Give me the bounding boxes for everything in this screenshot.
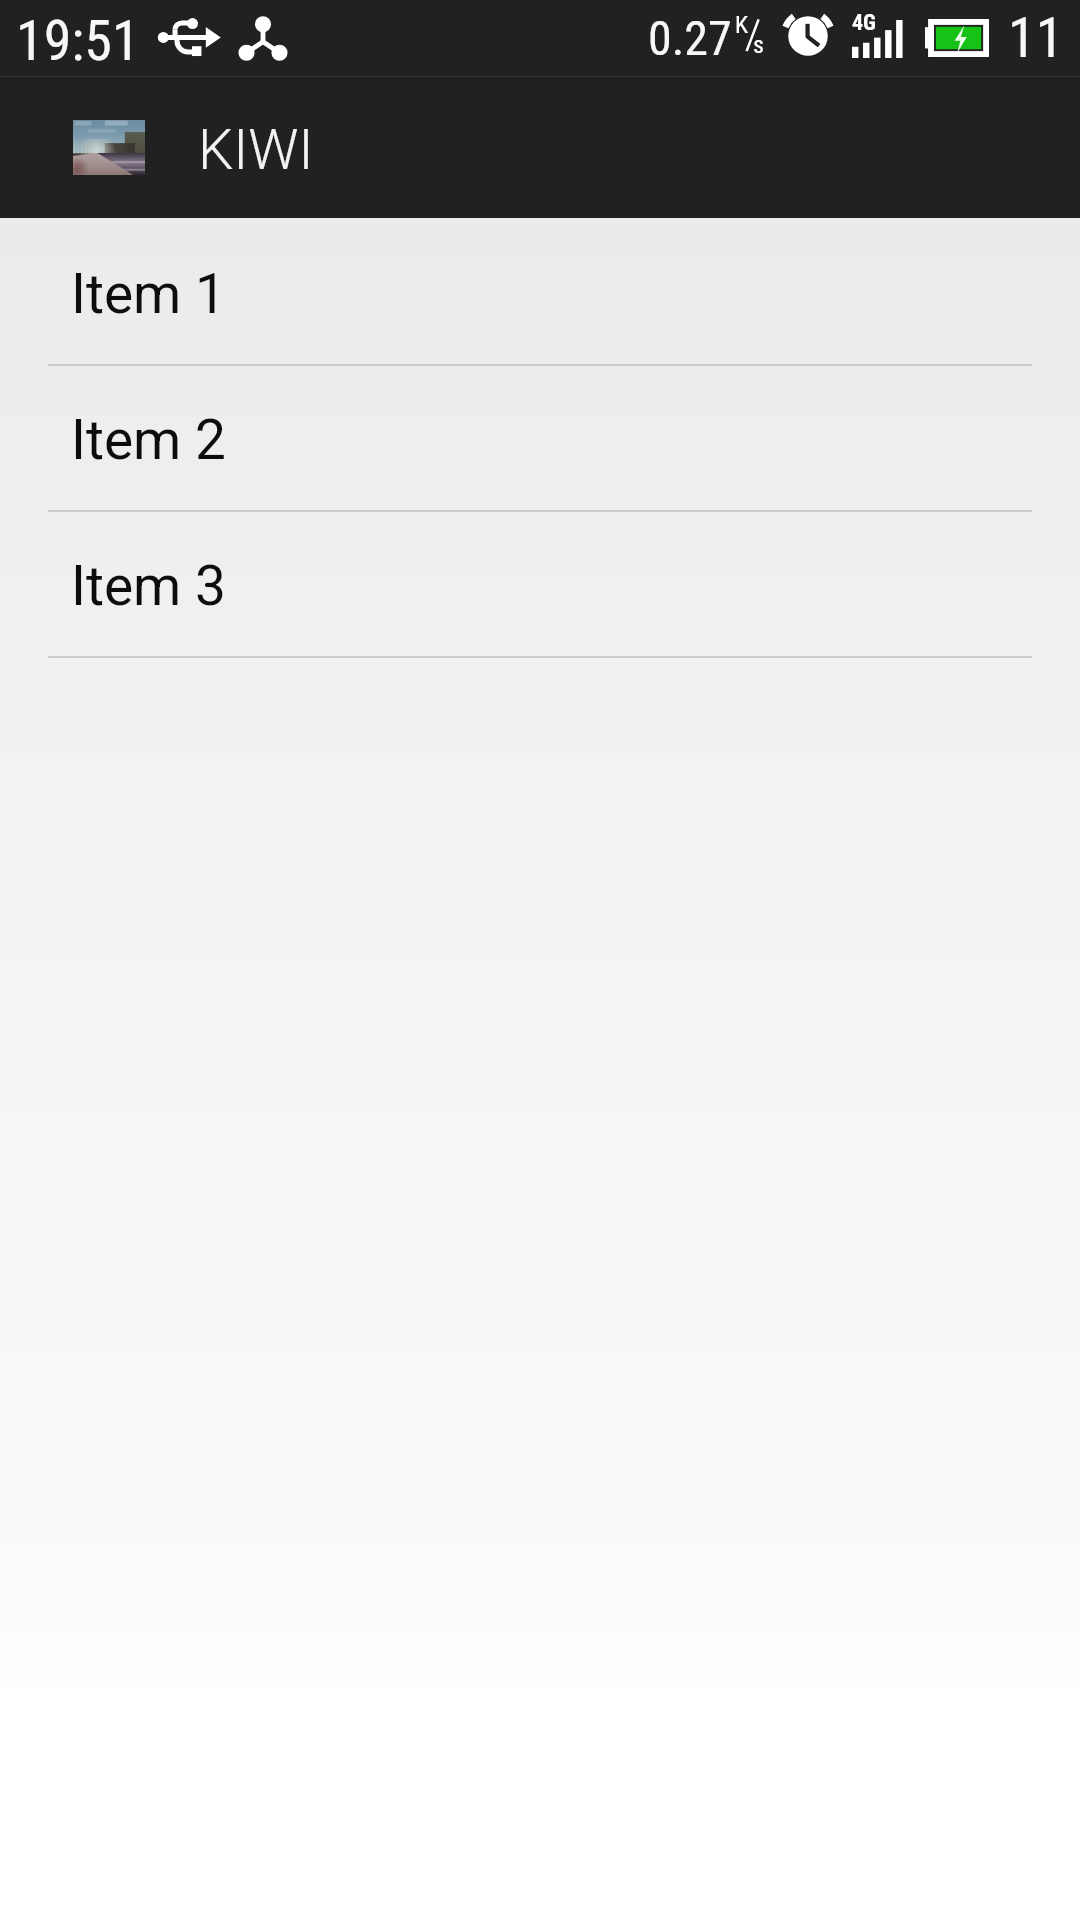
button[interactable]: Item 1	[0, 220, 1080, 366]
other: USB connected	[158, 13, 222, 57]
staticText: 4G	[852, 10, 876, 36]
staticText: s	[753, 31, 764, 59]
other: Battery charging	[925, 19, 989, 57]
staticText: 19:51	[16, 8, 140, 74]
other: KIWI app icon	[73, 120, 145, 175]
button[interactable]: KIWI app icon	[0, 77, 330, 218]
other: Data sharing	[238, 16, 288, 62]
staticText: Item 3	[71, 554, 226, 618]
staticText: Item 1	[71, 262, 226, 326]
staticText: Item 2	[71, 408, 226, 472]
button[interactable]: Item 3	[0, 512, 1080, 658]
button[interactable]: Item 2	[0, 366, 1080, 512]
staticText: 0.27	[648, 10, 732, 66]
other: Alarm set	[783, 8, 833, 56]
staticText: K	[735, 11, 749, 39]
staticText: KIWI	[198, 117, 314, 183]
other: 4G signal strength	[852, 10, 908, 60]
staticText: 11	[1008, 5, 1064, 71]
